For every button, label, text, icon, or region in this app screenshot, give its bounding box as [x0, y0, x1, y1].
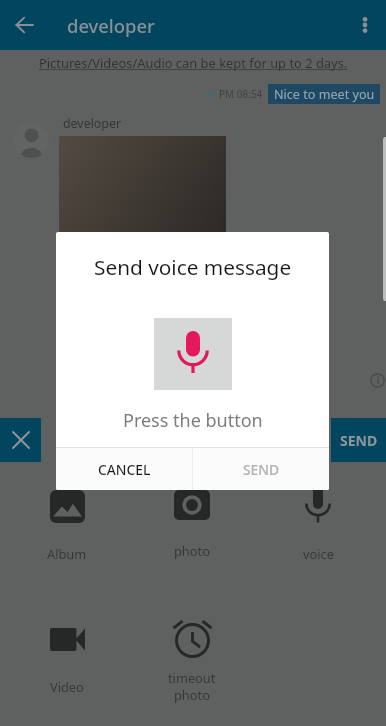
staticText: Nice to meet you [274, 86, 375, 103]
button[interactable]: voice [273, 480, 363, 568]
button[interactable]: More options [344, 0, 386, 50]
button[interactable]: Record voice message [154, 318, 232, 390]
button[interactable]: Back [0, 0, 48, 50]
staticText: Pictures/Videos/Audio can be kept for up… [39, 54, 348, 72]
staticText: Video [50, 678, 84, 695]
staticText: Album [47, 545, 87, 562]
button[interactable]: Info [367, 370, 386, 390]
button[interactable]: SEND [193, 448, 329, 490]
button[interactable]: Album [22, 480, 112, 568]
staticText: voice [303, 545, 334, 562]
staticText: developer [67, 13, 155, 38]
button[interactable]: SEND [331, 418, 386, 462]
staticText: photo [174, 542, 210, 559]
button[interactable]: Close [0, 418, 41, 462]
staticText: photo [174, 686, 210, 703]
button[interactable]: timeout [147, 611, 237, 716]
button[interactable]: Video [22, 618, 112, 706]
staticText: PM 08:54 [219, 87, 263, 101]
staticText: Press the button [123, 408, 263, 433]
button[interactable]: CANCEL [56, 448, 192, 490]
staticText: CANCEL [98, 460, 151, 479]
staticText: timeout [168, 669, 216, 686]
staticText: SEND [340, 431, 378, 450]
button[interactable]: photo [147, 480, 237, 568]
staticText: Send voice message [94, 253, 292, 281]
staticText: SEND [243, 460, 280, 479]
staticText: developer [63, 115, 122, 132]
